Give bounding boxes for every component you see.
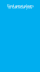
staticText: Find great places xyxy=(7,5,33,8)
staticText: to eat near you xyxy=(8,6,32,9)
